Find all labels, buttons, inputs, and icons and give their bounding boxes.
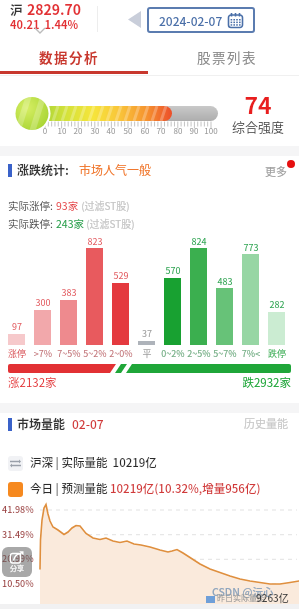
- staticText: 483: [212, 275, 238, 288]
- staticText: 383: [56, 286, 82, 299]
- staticText: 282: [264, 298, 290, 311]
- staticText: 97: [4, 320, 30, 333]
- staticText: 市场量能: [17, 415, 66, 432]
- staticText: 20: [68, 125, 88, 137]
- staticText: 0~2%: [160, 347, 186, 360]
- staticText: 股票列表: [197, 47, 257, 67]
- staticText: 综合强度: [232, 117, 285, 136]
- staticText: 10219亿(10.32%,增量956亿): [110, 480, 261, 497]
- staticText: 40.21 1.44%: [10, 16, 79, 32]
- staticText: 今日 | 预测量能: [30, 480, 110, 497]
- staticText: 市场人气一般: [79, 161, 152, 178]
- staticText: 90: [184, 125, 204, 137]
- staticText: 2829.70: [27, 0, 82, 19]
- staticText: 实际涨停:: [8, 198, 56, 213]
- staticText: 10: [52, 125, 72, 137]
- staticText: 30: [85, 125, 105, 137]
- staticText: 31.49%: [2, 528, 34, 541]
- button[interactable]: [0, 40, 148, 71]
- staticText: 历史量能: [244, 415, 288, 431]
- staticText: 7%<: [238, 347, 264, 360]
- staticText: >7%: [30, 347, 56, 360]
- staticText: 跌停: [264, 347, 290, 360]
- staticText: 37: [134, 327, 160, 340]
- staticText: 沪: [10, 0, 23, 18]
- staticText: 沪深 | 实际量能 10219亿: [30, 454, 157, 471]
- staticText: 更多: [265, 163, 287, 179]
- staticText: 涨2132家: [8, 374, 57, 391]
- staticText: 50: [118, 125, 138, 137]
- staticText: 平: [134, 347, 160, 360]
- button[interactable]: 分享: [2, 547, 32, 577]
- button[interactable]: [148, 40, 299, 71]
- staticText: CSDN @沅心: [212, 584, 274, 599]
- staticText: 300: [30, 296, 56, 309]
- staticText: 5~7%: [212, 347, 238, 360]
- staticText: 80: [168, 125, 188, 137]
- staticText: 2~0%: [108, 347, 134, 360]
- staticText: 74: [238, 87, 278, 120]
- button[interactable]: 历史量能: [244, 415, 294, 433]
- staticText: 9263亿: [256, 590, 289, 604]
- staticText: 2024-02-07: [159, 12, 223, 29]
- staticText: 0: [35, 125, 55, 137]
- staticText: 跌2932家: [227, 374, 291, 391]
- staticText: 570: [160, 264, 186, 277]
- staticText: 实际跌停:: [8, 216, 56, 231]
- staticText: 100: [201, 125, 221, 137]
- staticText: 02-07: [72, 415, 104, 432]
- staticText: 20.99%: [2, 552, 34, 565]
- staticText: 分享: [10, 563, 24, 573]
- staticText: 93家: [56, 198, 79, 213]
- staticText: 涨停: [4, 347, 30, 360]
- staticText: 40: [101, 125, 121, 137]
- staticText: 70: [151, 125, 171, 137]
- staticText: 773: [238, 241, 264, 254]
- staticText: 824: [186, 235, 212, 248]
- staticText: 2~5%: [186, 347, 212, 360]
- staticText: 41.98%: [2, 503, 34, 516]
- button[interactable]: 更多: [258, 160, 298, 180]
- staticText: 昨日实际量能: [217, 592, 265, 604]
- staticText: 7~5%: [56, 347, 82, 360]
- staticText: (过滤ST股): [84, 216, 135, 230]
- staticText: 823: [82, 235, 108, 248]
- staticText: 5~2%: [82, 347, 108, 360]
- staticText: 涨跌统计:: [17, 161, 69, 178]
- staticText: 10.50%: [2, 577, 34, 590]
- button[interactable]: 2024-02-07: [147, 7, 255, 33]
- staticText: 60: [135, 125, 155, 137]
- staticText: 数据分析: [39, 47, 99, 67]
- staticText: (过滤ST股): [79, 198, 130, 212]
- staticText: 529: [108, 269, 134, 282]
- button[interactable]: [128, 11, 141, 28]
- staticText: 243家: [56, 216, 84, 231]
